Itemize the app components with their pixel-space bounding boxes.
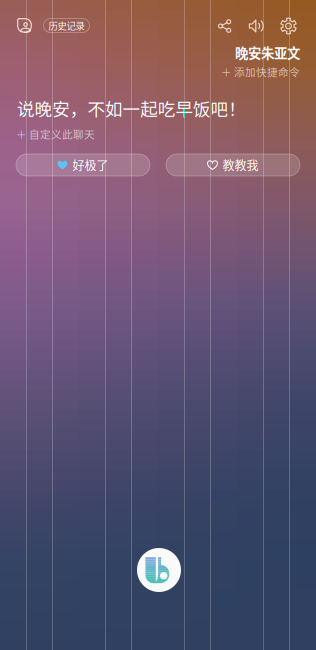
staticText: 教教我 [222,156,258,174]
button[interactable]: 教教我 [166,154,300,176]
staticText: 说晚安，不如一起吃早饭吧！ [17,95,246,121]
button[interactable]: Profile [11,12,37,38]
button[interactable]: ＋ 自定义此聊天 [16,126,306,142]
staticText: 历史记录 [48,19,84,32]
button[interactable]: ＋ 添加快捷命令 [221,64,300,79]
button[interactable]: Settings [272,12,304,40]
staticText: ＋ 添加快捷命令 [221,64,300,79]
button[interactable]: Sound [240,12,272,40]
button[interactable]: 历史记录 [37,12,95,38]
staticText: ＋ 自定义此聊天 [16,126,95,142]
staticText: 好极了 [72,156,108,174]
button[interactable]: Share [208,12,240,40]
button[interactable]: Bixby [137,548,181,592]
button[interactable]: 好极了 [16,154,150,176]
staticText: 晚安朱亚文 [235,43,300,62]
